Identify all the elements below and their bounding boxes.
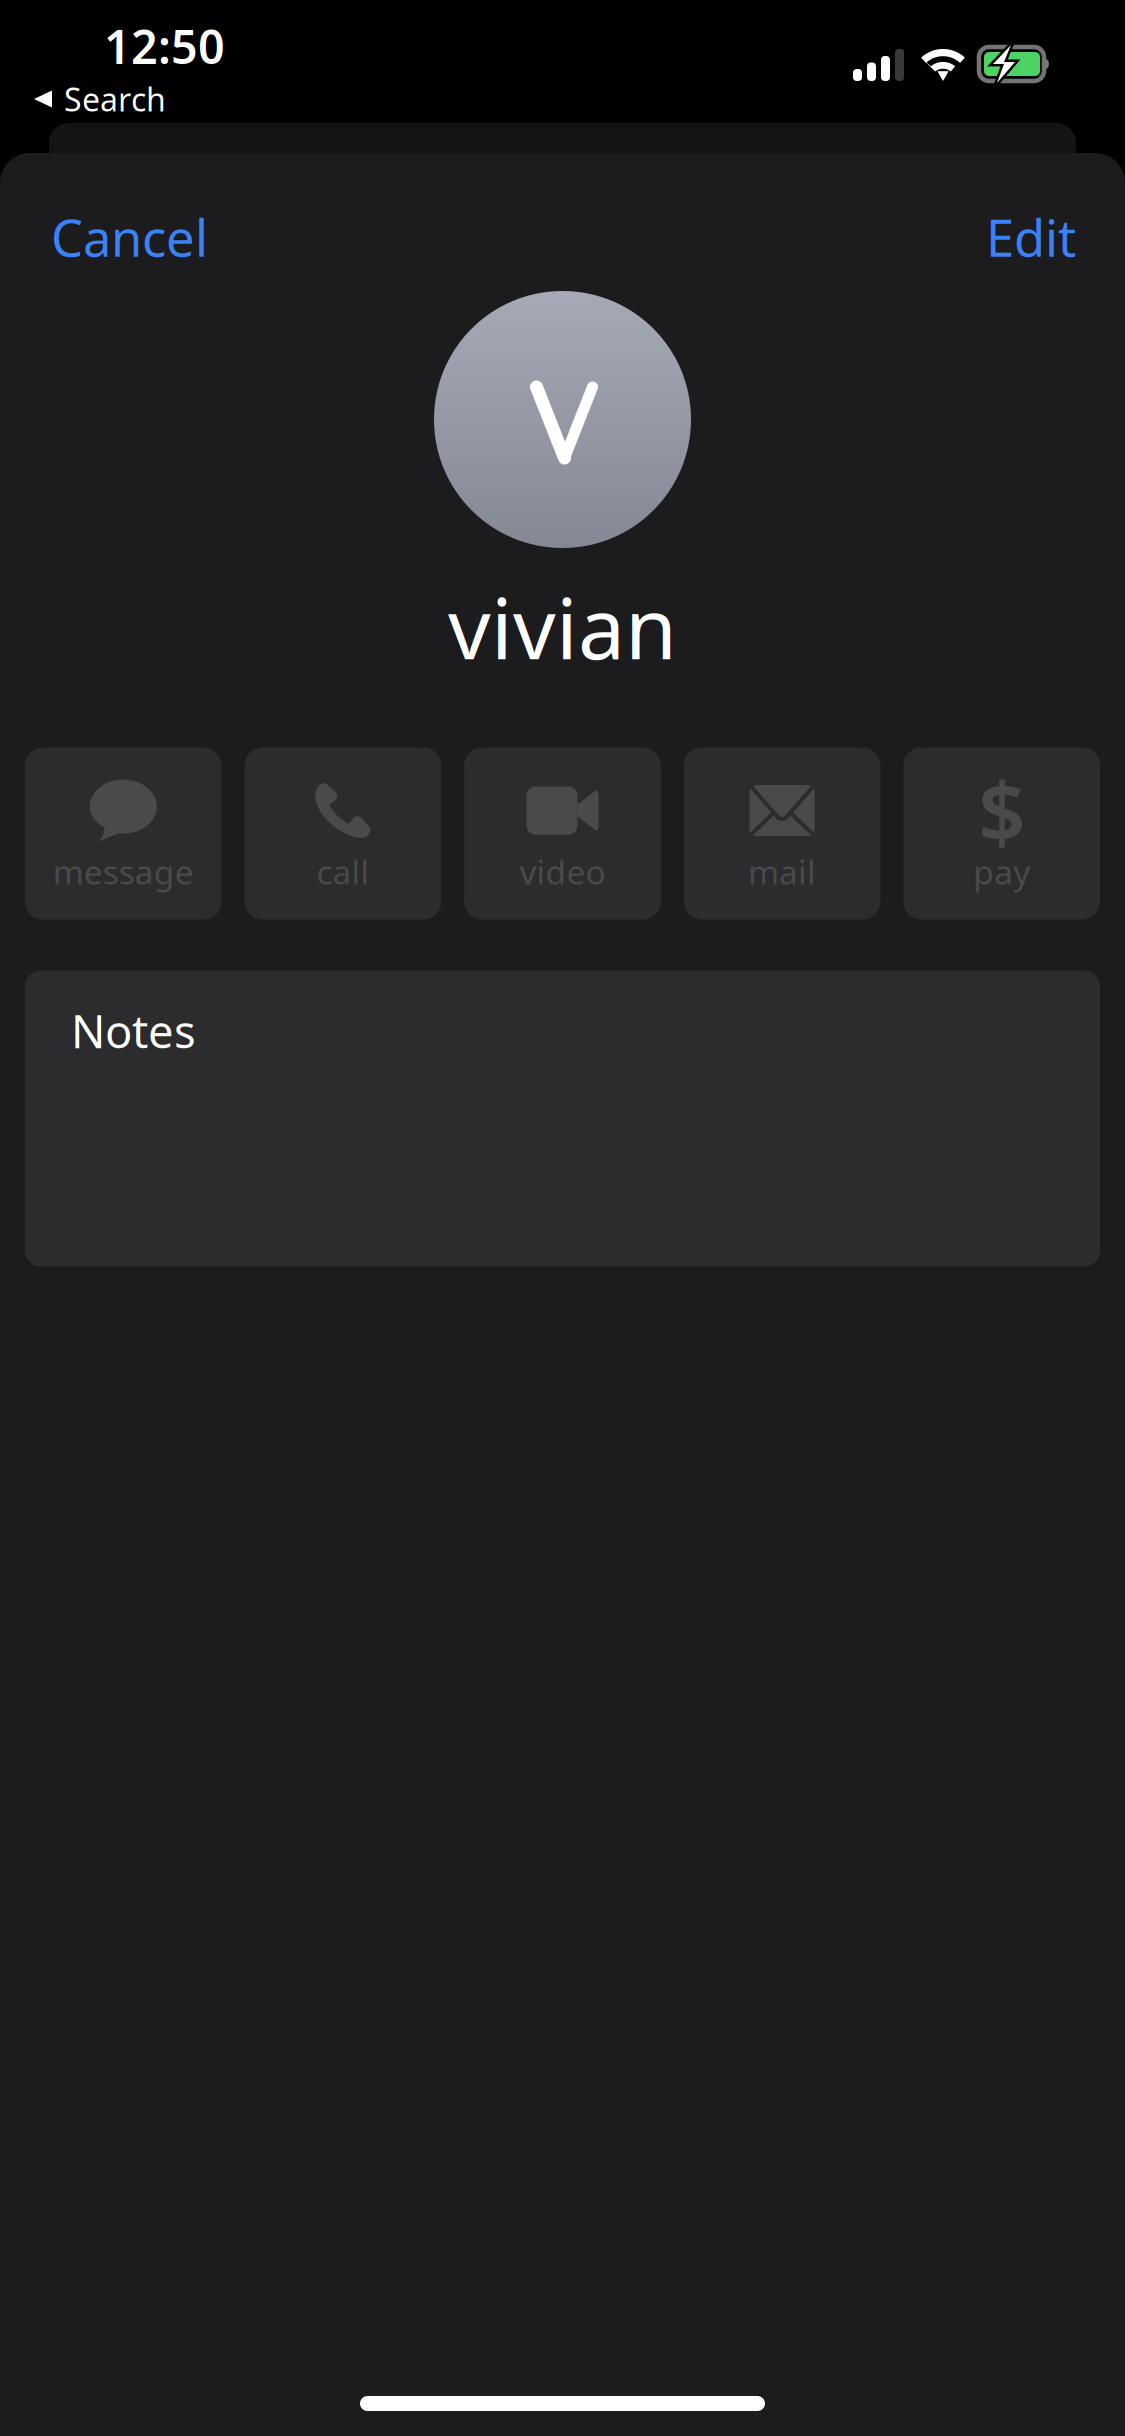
button[interactable]: $ <box>903 747 1100 919</box>
staticText: Cancel <box>51 203 208 271</box>
staticText: 12:50 <box>104 15 225 77</box>
staticText: $ <box>978 756 1025 865</box>
staticText: call <box>316 849 369 894</box>
staticText: Notes <box>71 1000 196 1061</box>
staticText: message <box>53 849 194 894</box>
button[interactable]: Search <box>0 82 1125 116</box>
button[interactable]: Cancel <box>0 162 232 282</box>
button[interactable]: video <box>464 747 661 919</box>
button[interactable]: call <box>245 747 441 919</box>
button[interactable]: message <box>25 747 222 919</box>
staticText: pay <box>973 849 1030 894</box>
button[interactable]: mail <box>684 747 880 919</box>
button[interactable]: Edit <box>962 162 1125 282</box>
staticText: Edit <box>986 203 1076 271</box>
staticText: mail <box>748 849 816 894</box>
staticText: video <box>519 849 605 894</box>
button[interactable]: Notes <box>25 970 1100 1266</box>
staticText: Search <box>64 78 166 120</box>
staticText: vivian <box>448 571 677 682</box>
